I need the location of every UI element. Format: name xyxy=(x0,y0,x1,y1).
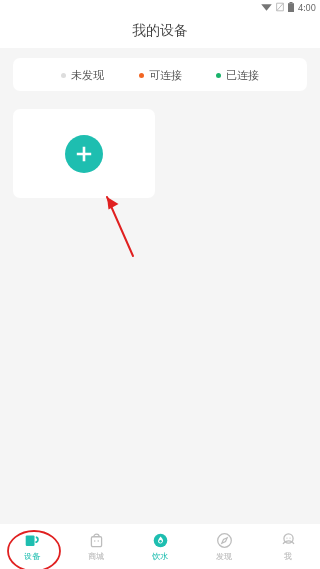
staticText: 已连接 xyxy=(226,68,259,82)
staticText: 商城 xyxy=(88,551,104,561)
staticText: 设备 xyxy=(24,551,40,561)
button[interactable]: 我 xyxy=(256,524,320,569)
button[interactable]: 未发现 xyxy=(13,58,307,91)
button[interactable]: 设备 xyxy=(0,524,64,569)
button[interactable]: 饮水 xyxy=(128,524,192,569)
button[interactable]: 发现 xyxy=(192,524,256,569)
staticText: 发现 xyxy=(216,551,232,561)
button[interactable]: 商城 xyxy=(64,524,128,569)
staticText: 我 xyxy=(284,551,292,561)
staticText: 我的设备 xyxy=(132,22,188,40)
staticText: 可连接 xyxy=(149,68,182,82)
staticText: 未发现 xyxy=(71,68,104,82)
staticText: 4:00 xyxy=(298,1,316,13)
button[interactable]: 添加设备 xyxy=(13,109,155,198)
staticText: 饮水 xyxy=(152,551,168,561)
